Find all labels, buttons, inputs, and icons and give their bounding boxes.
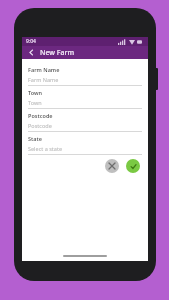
button[interactable]: State: [22, 132, 148, 155]
button[interactable]: Farm Name: [22, 63, 148, 86]
button[interactable]: Save: [126, 159, 140, 173]
staticText: Town: [28, 99, 42, 106]
button[interactable]: Postcode: [22, 109, 148, 132]
staticText: New Farm: [40, 48, 75, 58]
staticText: Postcode: [28, 122, 52, 129]
staticText: Town: [28, 89, 43, 96]
staticText: Postcode: [28, 112, 53, 119]
staticText: Farm Name: [28, 76, 59, 83]
staticText: Farm Name: [28, 66, 60, 73]
staticText: Select a state: [28, 145, 63, 152]
button[interactable]: Town: [22, 86, 148, 109]
staticText: 9:04: [26, 38, 36, 45]
button[interactable]: Back: [26, 47, 37, 58]
staticText: State: [28, 135, 42, 142]
button[interactable]: Cancel: [105, 159, 119, 173]
